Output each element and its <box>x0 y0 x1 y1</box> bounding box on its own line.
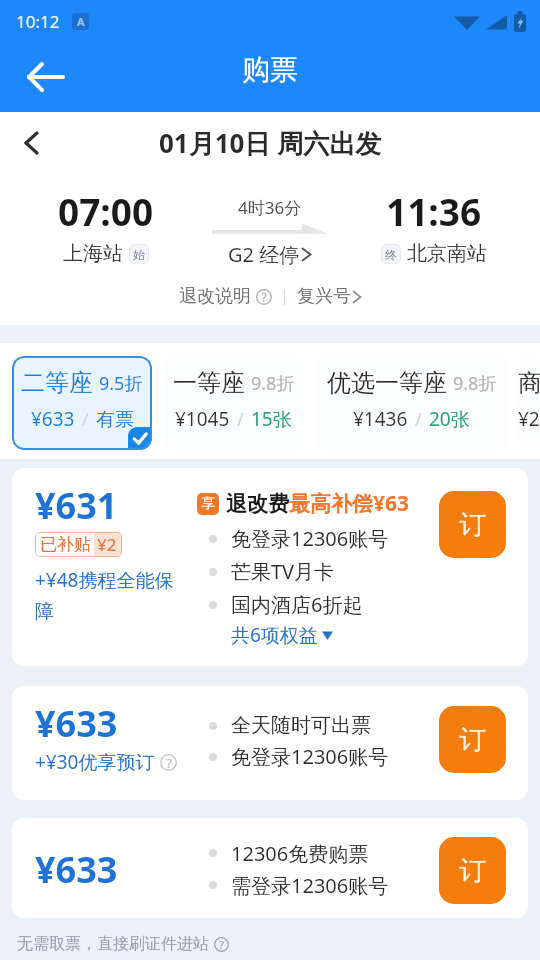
staticText: 有票 <box>96 408 134 432</box>
staticText: 9.5折 <box>99 371 143 396</box>
button[interactable]: 订 <box>439 837 506 904</box>
button[interactable]: Previous day <box>0 112 62 174</box>
staticText: 国内酒店6折起 <box>231 591 363 618</box>
staticText: 二等座 <box>21 368 93 398</box>
staticText: 退改说明 <box>179 285 251 308</box>
staticText: 复兴号 <box>297 285 351 308</box>
staticText: 终 <box>385 247 397 262</box>
staticText: 一等座 <box>173 368 245 398</box>
staticText: 商务座 <box>518 368 540 398</box>
staticText: 享 <box>201 495 215 513</box>
staticText: / <box>237 407 244 432</box>
staticText: 芒果TV月卡 <box>231 558 335 585</box>
staticText: 11:36 <box>386 186 482 236</box>
button[interactable]: 商务座 <box>518 356 540 450</box>
button[interactable]: 优选一等座 <box>315 356 508 450</box>
staticText: / <box>415 407 422 432</box>
button[interactable]: Back <box>10 42 82 112</box>
staticText: ? <box>261 289 267 305</box>
staticText: 15张 <box>251 406 292 432</box>
staticText: 最高补偿¥63 <box>289 489 410 518</box>
staticText: ¥1436 <box>353 406 408 432</box>
staticText: ¥633 <box>31 406 75 432</box>
staticText: 已补贴 <box>40 534 91 555</box>
staticText: 01月10日 周六出发 <box>159 125 382 161</box>
staticText: 07:00 <box>58 186 154 236</box>
button[interactable]: ¥633 <box>12 818 528 918</box>
button[interactable]: 共6项权益 <box>231 621 333 649</box>
staticText: 优选一等座 <box>327 368 447 398</box>
staticText: ¥633 <box>35 699 118 748</box>
staticText: G2 经停 <box>228 241 300 268</box>
button[interactable]: G2 经停 <box>228 241 312 268</box>
staticText: / <box>82 407 89 432</box>
button[interactable]: 订 <box>439 491 506 558</box>
staticText: ¥2400 <box>518 406 540 432</box>
staticText: ? <box>219 937 224 952</box>
button[interactable]: ¥633 <box>12 686 528 800</box>
staticText: 始 <box>133 247 145 262</box>
staticText: 订 <box>459 854 486 888</box>
staticText: ¥1045 <box>175 406 230 432</box>
staticText: 订 <box>459 723 486 757</box>
staticText: ? <box>166 754 172 771</box>
staticText: 退改费 <box>226 491 289 517</box>
staticText: 购票 <box>242 52 298 87</box>
staticText: 12306免费购票 <box>231 840 369 867</box>
staticText: +¥30优享预订 <box>35 749 155 775</box>
staticText: 4时36分 <box>238 196 302 219</box>
staticText: 北京南站 <box>407 241 487 266</box>
button[interactable]: 二等座 <box>12 356 152 450</box>
staticText: 需登录12306账号 <box>231 872 389 899</box>
button[interactable]: 退改说明 <box>179 285 272 308</box>
button[interactable]: 一等座 <box>162 356 305 450</box>
staticText: 免登录12306账号 <box>231 743 389 770</box>
staticText: 订 <box>459 508 486 542</box>
button[interactable]: 订 <box>439 706 506 773</box>
button[interactable]: 复兴号 <box>297 285 362 308</box>
staticText: 免登录12306账号 <box>231 525 389 552</box>
staticText: 上海站 <box>63 241 123 266</box>
staticText: ¥631 <box>35 481 118 530</box>
staticText: 9.8折 <box>251 371 295 396</box>
staticText: 20张 <box>429 406 470 432</box>
staticText: 无需取票，直接刷证件进站 <box>17 934 209 954</box>
staticText: ¥2 <box>97 533 117 556</box>
button[interactable]: ¥631 <box>12 468 528 666</box>
staticText: A <box>77 14 85 29</box>
staticText: +¥48携程全能保障 <box>35 567 183 624</box>
staticText: 10:12 <box>16 10 60 33</box>
staticText: 共6项权益 <box>231 622 318 648</box>
staticText: 9.8折 <box>453 371 497 396</box>
staticText: ¥633 <box>35 845 118 894</box>
staticText: 全天随时可出票 <box>231 713 371 738</box>
